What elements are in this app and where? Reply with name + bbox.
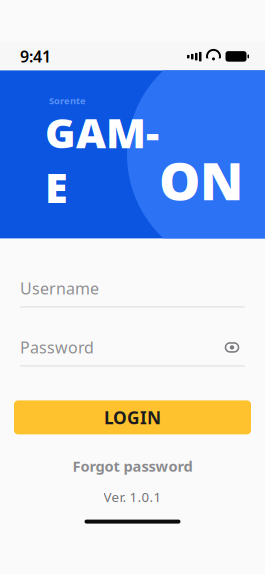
staticText: Password [20,337,94,358]
staticText: Username [20,278,99,299]
staticText: Forgot password [72,456,192,476]
button[interactable]: Show password [219,337,245,357]
button[interactable]: Forgot password [0,452,265,480]
staticText: ON [159,145,243,214]
staticText: Sorente [49,94,86,107]
staticText: GAME [45,105,159,214]
button[interactable]: LOGIN [14,400,251,434]
staticText: 9:41 [20,46,51,67]
staticText: LOGIN [104,406,161,429]
staticText: Ver. 1.0.1 [103,488,161,506]
